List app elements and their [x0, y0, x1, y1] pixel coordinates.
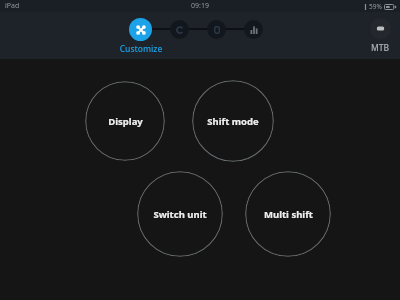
staticText: 09:19: [191, 1, 209, 11]
button[interactable]: Multi shift: [245, 171, 331, 257]
button[interactable]: Customize: [129, 18, 152, 41]
button[interactable]: Sync: [170, 20, 189, 39]
button[interactable]: Battery: [207, 20, 226, 39]
staticText: Switch unit: [153, 208, 207, 221]
button[interactable]: Switch unit: [137, 171, 223, 257]
staticText: Shift mode: [207, 115, 259, 128]
button[interactable]: Display: [85, 81, 165, 161]
button[interactable]: Stats: [244, 20, 263, 39]
staticText: MTB: [371, 42, 390, 54]
staticText: Display: [108, 115, 143, 128]
staticText: Multi shift: [264, 208, 313, 221]
button[interactable]: Shift mode: [192, 80, 274, 162]
staticText: 59%: [369, 2, 382, 11]
button[interactable]: MTB profile: [365, 17, 396, 55]
staticText: Customize: [118, 43, 164, 55]
staticText: iPad: [5, 1, 20, 11]
